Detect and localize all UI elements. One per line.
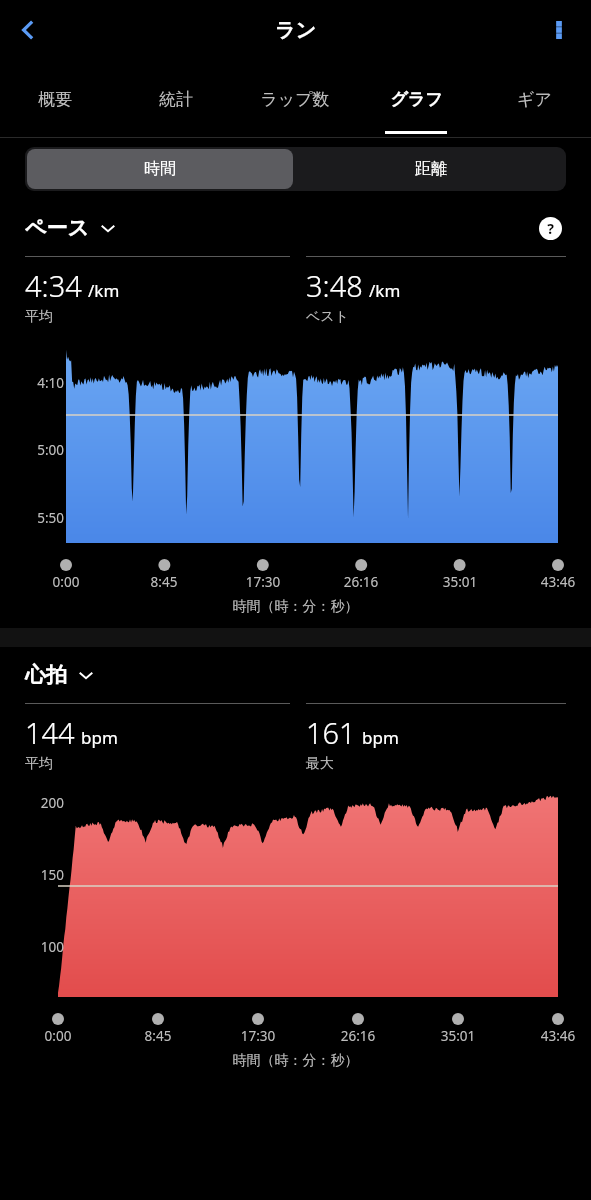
staticText: ペース xyxy=(25,215,89,241)
staticText: 平均 xyxy=(25,755,53,773)
staticText: 5:50 xyxy=(18,509,64,527)
staticText: 時間 xyxy=(144,159,176,179)
staticText: 26:16 xyxy=(326,573,396,591)
staticText: ラップ数 xyxy=(260,89,330,110)
staticText: ? xyxy=(547,219,554,238)
staticText: 距離 xyxy=(415,159,447,179)
staticText: bpm xyxy=(81,726,118,749)
button[interactable]: 概要 xyxy=(0,60,113,138)
staticText: ベスト xyxy=(306,308,349,326)
staticText: 43:46 xyxy=(523,1027,591,1045)
staticText: ギア xyxy=(517,89,552,110)
staticText: 17:30 xyxy=(223,1027,293,1045)
button[interactable]: グラフ xyxy=(358,60,474,138)
staticText: 17:30 xyxy=(228,573,298,591)
staticText: 200 xyxy=(18,794,64,812)
button[interactable]: 距離 xyxy=(295,147,566,191)
staticText: 4:10 xyxy=(18,374,64,392)
button[interactable]: 統計 xyxy=(118,60,234,138)
staticText: /km xyxy=(88,279,120,302)
staticText: 3:48 xyxy=(306,266,363,305)
button[interactable]: Help xyxy=(533,211,567,245)
staticText: 時間（時：分：秒） xyxy=(0,1052,591,1070)
staticText: 26:16 xyxy=(323,1027,393,1045)
staticText: 8:45 xyxy=(123,1027,193,1045)
button[interactable]: ラップ数 xyxy=(237,60,353,138)
staticText: 平均 xyxy=(25,308,53,326)
button[interactable]: Back xyxy=(4,6,52,54)
staticText: 0:00 xyxy=(23,1027,93,1045)
staticText: 43:46 xyxy=(523,573,591,591)
staticText: 5:00 xyxy=(18,441,64,459)
staticText: 35:01 xyxy=(425,573,495,591)
button[interactable]: 心拍 xyxy=(25,662,95,688)
staticText: ラン xyxy=(275,18,316,43)
staticText: /km xyxy=(369,279,401,302)
staticText: 統計 xyxy=(159,89,193,110)
staticText: 8:45 xyxy=(129,573,199,591)
button[interactable]: More options xyxy=(537,8,581,52)
button[interactable]: 時間 xyxy=(27,149,293,189)
staticText: 4:34 xyxy=(25,266,82,305)
button[interactable]: ギア xyxy=(476,60,591,138)
staticText: 150 xyxy=(18,866,64,884)
staticText: 0:00 xyxy=(31,573,101,591)
staticText: bpm xyxy=(362,726,399,749)
button[interactable]: ペース xyxy=(25,215,117,241)
staticText: グラフ xyxy=(390,89,443,110)
staticText: 144 xyxy=(25,713,75,752)
staticText: 心拍 xyxy=(25,662,67,688)
staticText: 161 xyxy=(306,713,356,752)
staticText: 最大 xyxy=(306,755,334,773)
staticText: 35:01 xyxy=(423,1027,493,1045)
staticText: 概要 xyxy=(38,89,72,110)
staticText: 100 xyxy=(18,938,64,956)
staticText: 時間（時：分：秒） xyxy=(0,598,591,616)
